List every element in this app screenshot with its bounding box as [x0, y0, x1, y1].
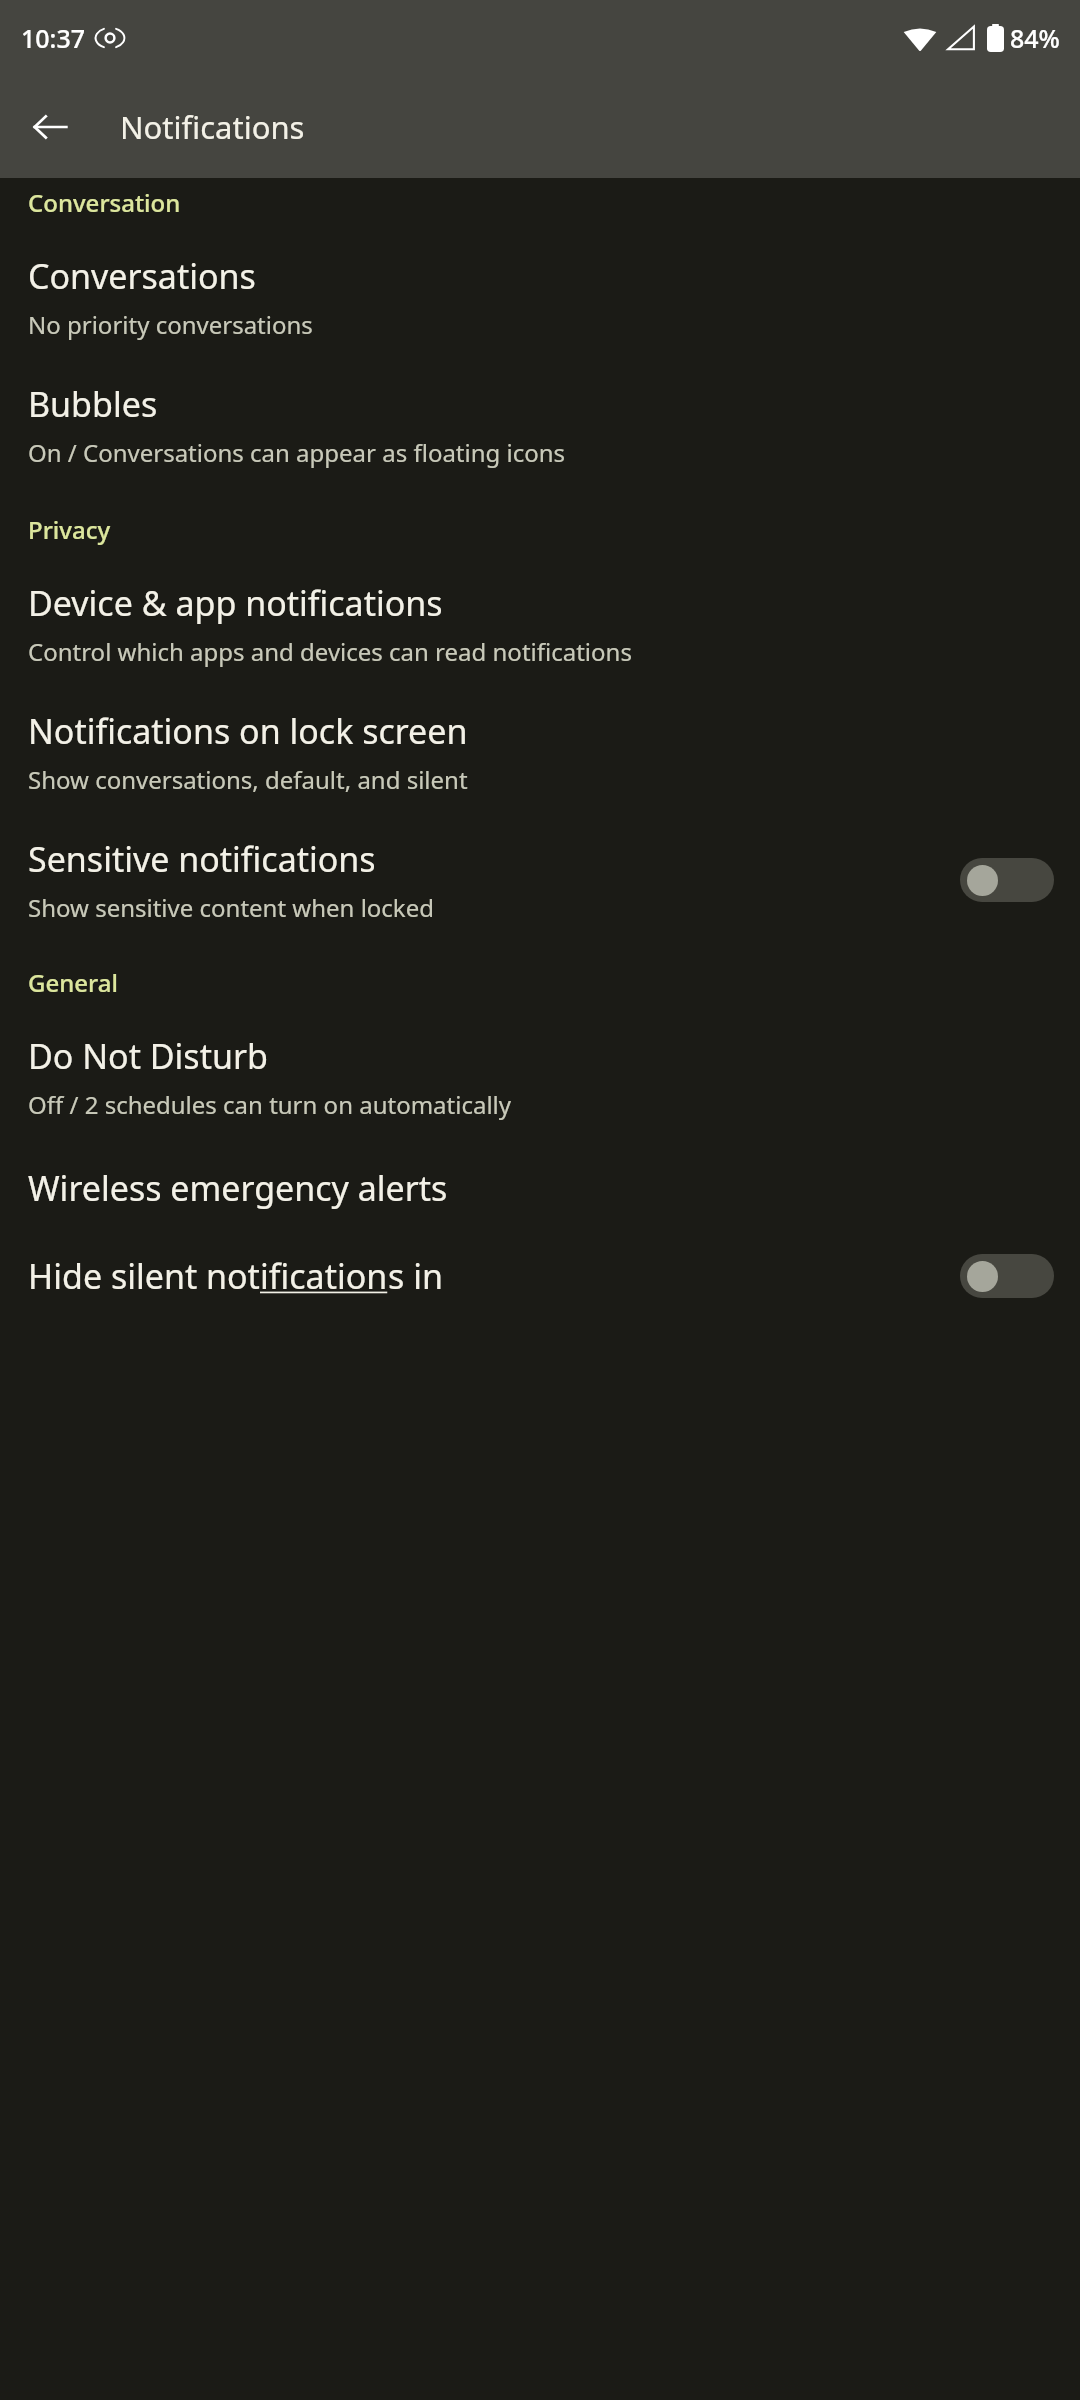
staticText: Hide silent not — [28, 1253, 260, 1299]
button[interactable]: Conversations — [0, 219, 1080, 341]
staticText: Do Not Disturb — [28, 1033, 268, 1079]
staticText: Wireless emergency alerts — [28, 1165, 448, 1211]
staticText: Privacy — [28, 513, 1080, 546]
staticText: 84% — [1010, 21, 1060, 55]
button[interactable]: Navigate up — [20, 97, 80, 157]
staticText: Notifications on lock screen — [28, 708, 468, 754]
staticText: 10:37 — [21, 21, 86, 55]
staticText: On / Conversations can appear as floatin… — [28, 436, 566, 469]
staticText: Bubbles — [28, 381, 158, 427]
staticText: Device & app notifications — [28, 580, 443, 626]
staticText: ification — [260, 1253, 388, 1299]
button[interactable]: Wireless emergency alerts — [0, 1121, 1080, 1211]
staticText: Off / 2 schedules can turn on automatica… — [28, 1088, 512, 1121]
staticText: Sensitive notifications — [28, 836, 376, 882]
button[interactable]: Sensitive notifications — [0, 796, 1080, 924]
button[interactable]: Bubbles — [0, 341, 1080, 469]
staticText: s in — [388, 1253, 443, 1299]
staticText: No priority conversations — [28, 308, 313, 341]
staticText: Control which apps and devices can read … — [28, 635, 632, 668]
staticText: Notifications — [120, 106, 305, 148]
staticText: General — [28, 966, 1080, 999]
staticText: Show sensitive content when locked — [28, 891, 434, 924]
button[interactable]: Notifications on lock screen — [0, 668, 1080, 796]
staticText: Conversation — [28, 186, 1080, 219]
button[interactable]: Hide silent not — [0, 1211, 1080, 1299]
staticText: Show conversations, default, and silent — [28, 763, 468, 796]
button[interactable]: Toggle setting — [960, 858, 1054, 902]
staticText: Conversations — [28, 253, 256, 299]
button[interactable]: Toggle setting — [960, 1254, 1054, 1298]
button[interactable]: Device & app notifications — [0, 546, 1080, 668]
button[interactable]: Do Not Disturb — [0, 999, 1080, 1121]
